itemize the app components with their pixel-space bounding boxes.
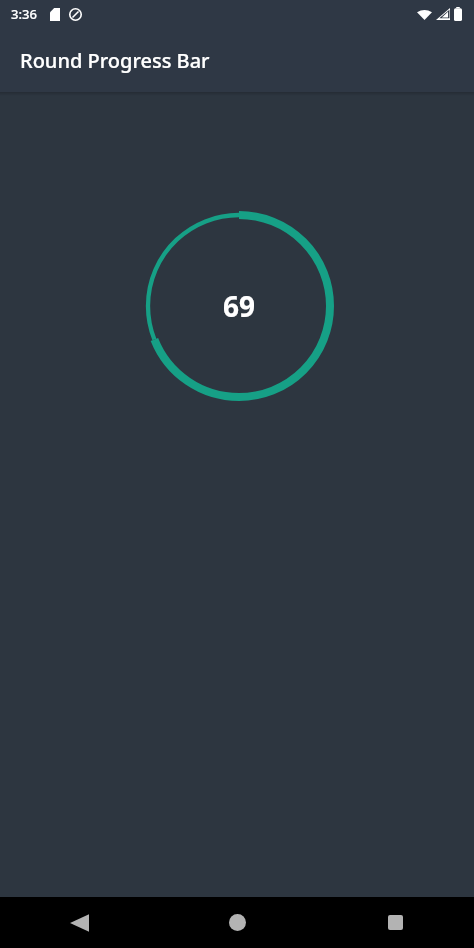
staticText: 3:36 <box>11 5 37 23</box>
button[interactable]: Home <box>158 897 316 948</box>
staticText: Round Progress Bar <box>20 47 210 74</box>
button[interactable]: Recent apps <box>316 897 474 948</box>
button[interactable]: Back <box>0 897 158 948</box>
staticText: 69 <box>223 287 256 325</box>
